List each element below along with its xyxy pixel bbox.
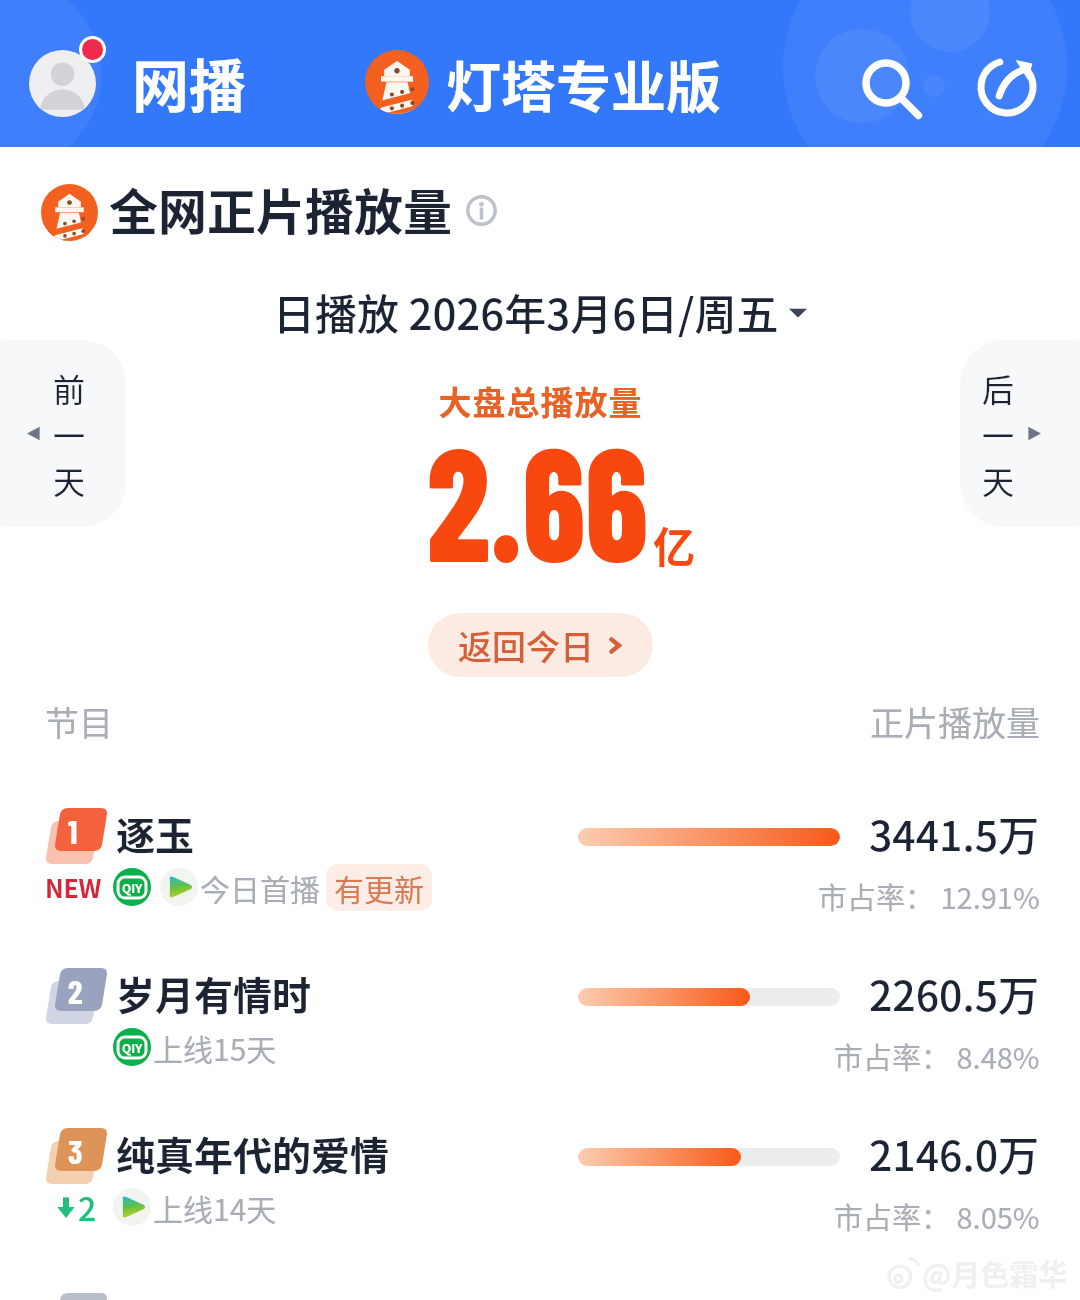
staticText: 岁月有情时 [116,965,312,1021]
button[interactable]: Next day [960,340,1080,527]
staticText: 前 [53,365,86,411]
staticText: NEW [45,869,102,905]
staticText: 上线15天 [153,1026,277,1069]
button[interactable]: 2 [0,960,1080,1110]
staticText: QIY [122,879,143,896]
staticText: 市占率： 8.48% [834,1035,1040,1077]
staticText: 2260.5万 [869,963,1040,1022]
staticText: 有更新 [334,866,424,909]
staticText: 2 [68,971,83,1011]
staticText: 日播放 2026年3月6日/周五 [273,281,779,342]
staticText: 上线14天 [153,1186,277,1229]
button[interactable]: Previous day [0,340,126,527]
button[interactable]: Search [845,43,933,131]
staticText: 1 [68,811,78,851]
button[interactable]: Profile [29,36,111,118]
button[interactable]: 返回今日 [428,613,653,677]
staticText: 2 [78,1184,97,1230]
staticText: 纯真年代的爱情 [116,1125,390,1181]
staticText: 3441.5万 [869,803,1040,862]
staticText: 3 [68,1131,83,1171]
staticText: 灯塔专业版 [446,43,722,123]
staticText: 天 [53,457,86,503]
button[interactable]: 3 [0,1120,1080,1270]
button[interactable]: Share [963,43,1051,131]
staticText: QIY [122,1039,143,1056]
staticText: 今日首播 [200,866,320,909]
staticText: 一 [53,411,86,457]
staticText: 一 [982,411,1015,457]
staticText: 天 [982,457,1015,503]
staticText: 2146.0万 [869,1123,1040,1182]
staticText: 正片播放量 [870,697,1040,746]
staticText: 网播 [132,41,246,124]
button[interactable]: 1 [0,800,1080,950]
staticText: 返回今日 [458,621,594,670]
button[interactable]: 日播放 2026年3月6日/周五 [273,281,808,342]
staticText: 逐玉 [116,805,195,861]
staticText: 市占率： 8.05% [834,1195,1040,1237]
staticText: @月色霜华 [922,1252,1068,1294]
staticText: 2.66 [427,402,649,594]
staticText: 亿 [653,514,696,575]
staticText: 大盘总播放量 [438,377,642,425]
staticText: 全网正片播放量 [109,173,453,244]
button[interactable]: 4 [0,1285,1080,1300]
staticText: 市占率： 12.91% [818,875,1040,917]
staticText: 后 [982,365,1015,411]
staticText: 节目 [45,697,113,746]
button[interactable]: About this metric [466,195,497,226]
